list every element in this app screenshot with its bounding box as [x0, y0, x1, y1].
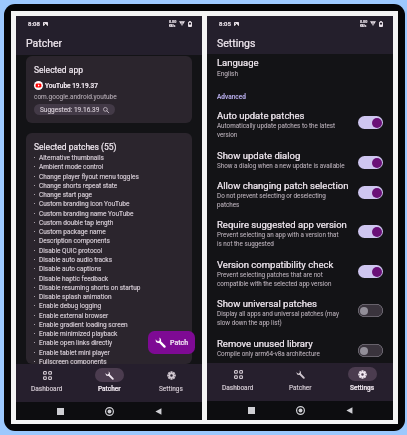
staticText: Enable open links directly — [39, 339, 113, 347]
button[interactable]: Selected patches (55) — [26, 133, 192, 364]
staticText: Alternative thumbnails — [39, 154, 104, 162]
button[interactable]: Home — [284, 401, 317, 420]
button[interactable]: Switch on — [358, 186, 383, 199]
button[interactable]: Settings — [140, 364, 202, 402]
staticText: Enable external browser — [39, 312, 109, 320]
staticText: Enable debug logging — [39, 302, 102, 310]
staticText: Version compatibility check — [217, 259, 334, 270]
staticText: Custom branding name YouTube — [39, 210, 134, 218]
button[interactable]: Remove unused library — [217, 338, 383, 368]
button[interactable]: Switch on — [358, 225, 383, 238]
staticText: Patch — [170, 339, 189, 347]
button[interactable]: Show universal patches — [217, 298, 383, 338]
staticText: Disable resuming shorts on startup — [39, 284, 141, 292]
staticText: KB/s — [360, 24, 367, 27]
staticText: Patcher — [26, 37, 63, 49]
staticText: Dashboard — [31, 385, 63, 393]
staticText: Disable splash animation — [39, 293, 112, 301]
staticText: Compile only arm64-v8a architecture — [217, 350, 320, 357]
staticText: Custom double tap length — [39, 219, 114, 227]
staticText: Custom package name — [39, 228, 106, 236]
staticText: com.google.android.youtube — [34, 93, 117, 101]
staticText: Description components — [39, 237, 110, 245]
button[interactable]: Suggested: 19.16.39 — [34, 104, 115, 115]
staticText: Settings — [350, 384, 375, 392]
staticText: Dashboard — [222, 384, 254, 392]
staticText: Patcher — [289, 384, 312, 392]
button[interactable]: Language — [217, 57, 383, 78]
button[interactable]: Require suggested app version — [217, 219, 383, 259]
staticText: 0.00 — [169, 20, 177, 24]
staticText: Show update dialog — [217, 150, 301, 161]
staticText: Change shorts repeat state — [39, 182, 118, 190]
staticText: Ambient mode control — [39, 163, 104, 171]
staticText: Show universal patches — [217, 298, 317, 309]
button[interactable]: Auto update patches — [217, 110, 383, 150]
staticText: Auto update patches — [217, 110, 305, 121]
button[interactable]: Version compatibility check — [217, 259, 383, 299]
staticText: Enable minimized playback — [39, 330, 118, 338]
staticText: Enable gradient loading screen — [39, 321, 128, 329]
staticText: Disable haptic feedback — [39, 275, 109, 283]
staticText: Change player flyout menu toggles — [39, 173, 139, 181]
button[interactable]: Back — [333, 401, 366, 420]
staticText: Disable auto captions — [39, 265, 102, 273]
button[interactable]: Switch on — [358, 116, 383, 129]
staticText: Selected patches (55) — [34, 142, 117, 152]
staticText: Settings — [217, 37, 256, 49]
staticText: Automatically update patches to the late… — [217, 122, 336, 139]
button[interactable]: Show update dialog — [217, 150, 383, 180]
staticText: 8:08 — [28, 20, 40, 27]
staticText: Remove unused library — [217, 338, 313, 349]
button[interactable]: Recent apps — [44, 402, 77, 420]
staticText: Allow changing patch selection — [217, 180, 349, 191]
button[interactable]: Patcher — [78, 364, 140, 402]
staticText: Do not prevent selecting or deselecting … — [217, 192, 326, 209]
staticText: Advanced — [217, 93, 246, 101]
staticText: Prevent selecting patches that are not c… — [217, 271, 332, 288]
button[interactable]: Switch on — [358, 265, 383, 278]
button[interactable]: Allow changing patch selection — [217, 180, 383, 220]
button[interactable]: Switch off — [358, 344, 383, 357]
button[interactable]: Selected app — [26, 56, 192, 123]
button[interactable]: Patcher — [269, 363, 331, 401]
staticText: Enable tablet mini player — [39, 349, 110, 357]
staticText: Custom branding icon YouTube — [39, 200, 130, 208]
button[interactable]: Settings — [331, 363, 393, 401]
button[interactable]: Dashboard — [207, 363, 269, 401]
staticText: Patcher — [98, 385, 121, 393]
button[interactable]: Back — [142, 402, 175, 420]
staticText: 8:05 — [219, 20, 231, 27]
staticText: Show a dialog when a new update is avail… — [217, 162, 345, 169]
staticText: Display all apps and universal patches (… — [217, 310, 339, 327]
staticText: Prevent selecting an app with a version … — [217, 231, 339, 248]
staticText: Settings — [159, 385, 183, 393]
button[interactable]: Switch on — [358, 156, 383, 169]
staticText: Language — [217, 57, 259, 68]
button[interactable]: Recent apps — [235, 401, 268, 420]
staticText: English — [217, 70, 239, 78]
staticText: Selected app — [34, 65, 83, 75]
staticText: Require suggested app version — [217, 219, 347, 230]
staticText: KB/s — [169, 24, 176, 27]
staticText: YouTube 19.19.37 — [45, 82, 98, 90]
staticText: Disable auto audio tracks — [39, 256, 113, 264]
staticText: Disable QUIC protocol — [39, 247, 103, 255]
button[interactable]: Home — [93, 402, 126, 420]
button[interactable]: Patch — [148, 331, 195, 354]
staticText: 0.00 — [360, 20, 368, 24]
button[interactable]: Switch off — [358, 304, 383, 317]
staticText: Fullscreen components — [39, 358, 107, 364]
button[interactable]: Dashboard — [16, 364, 78, 402]
staticText: Suggested: 19.16.39 — [40, 106, 100, 114]
staticText: Change start page — [39, 191, 93, 199]
